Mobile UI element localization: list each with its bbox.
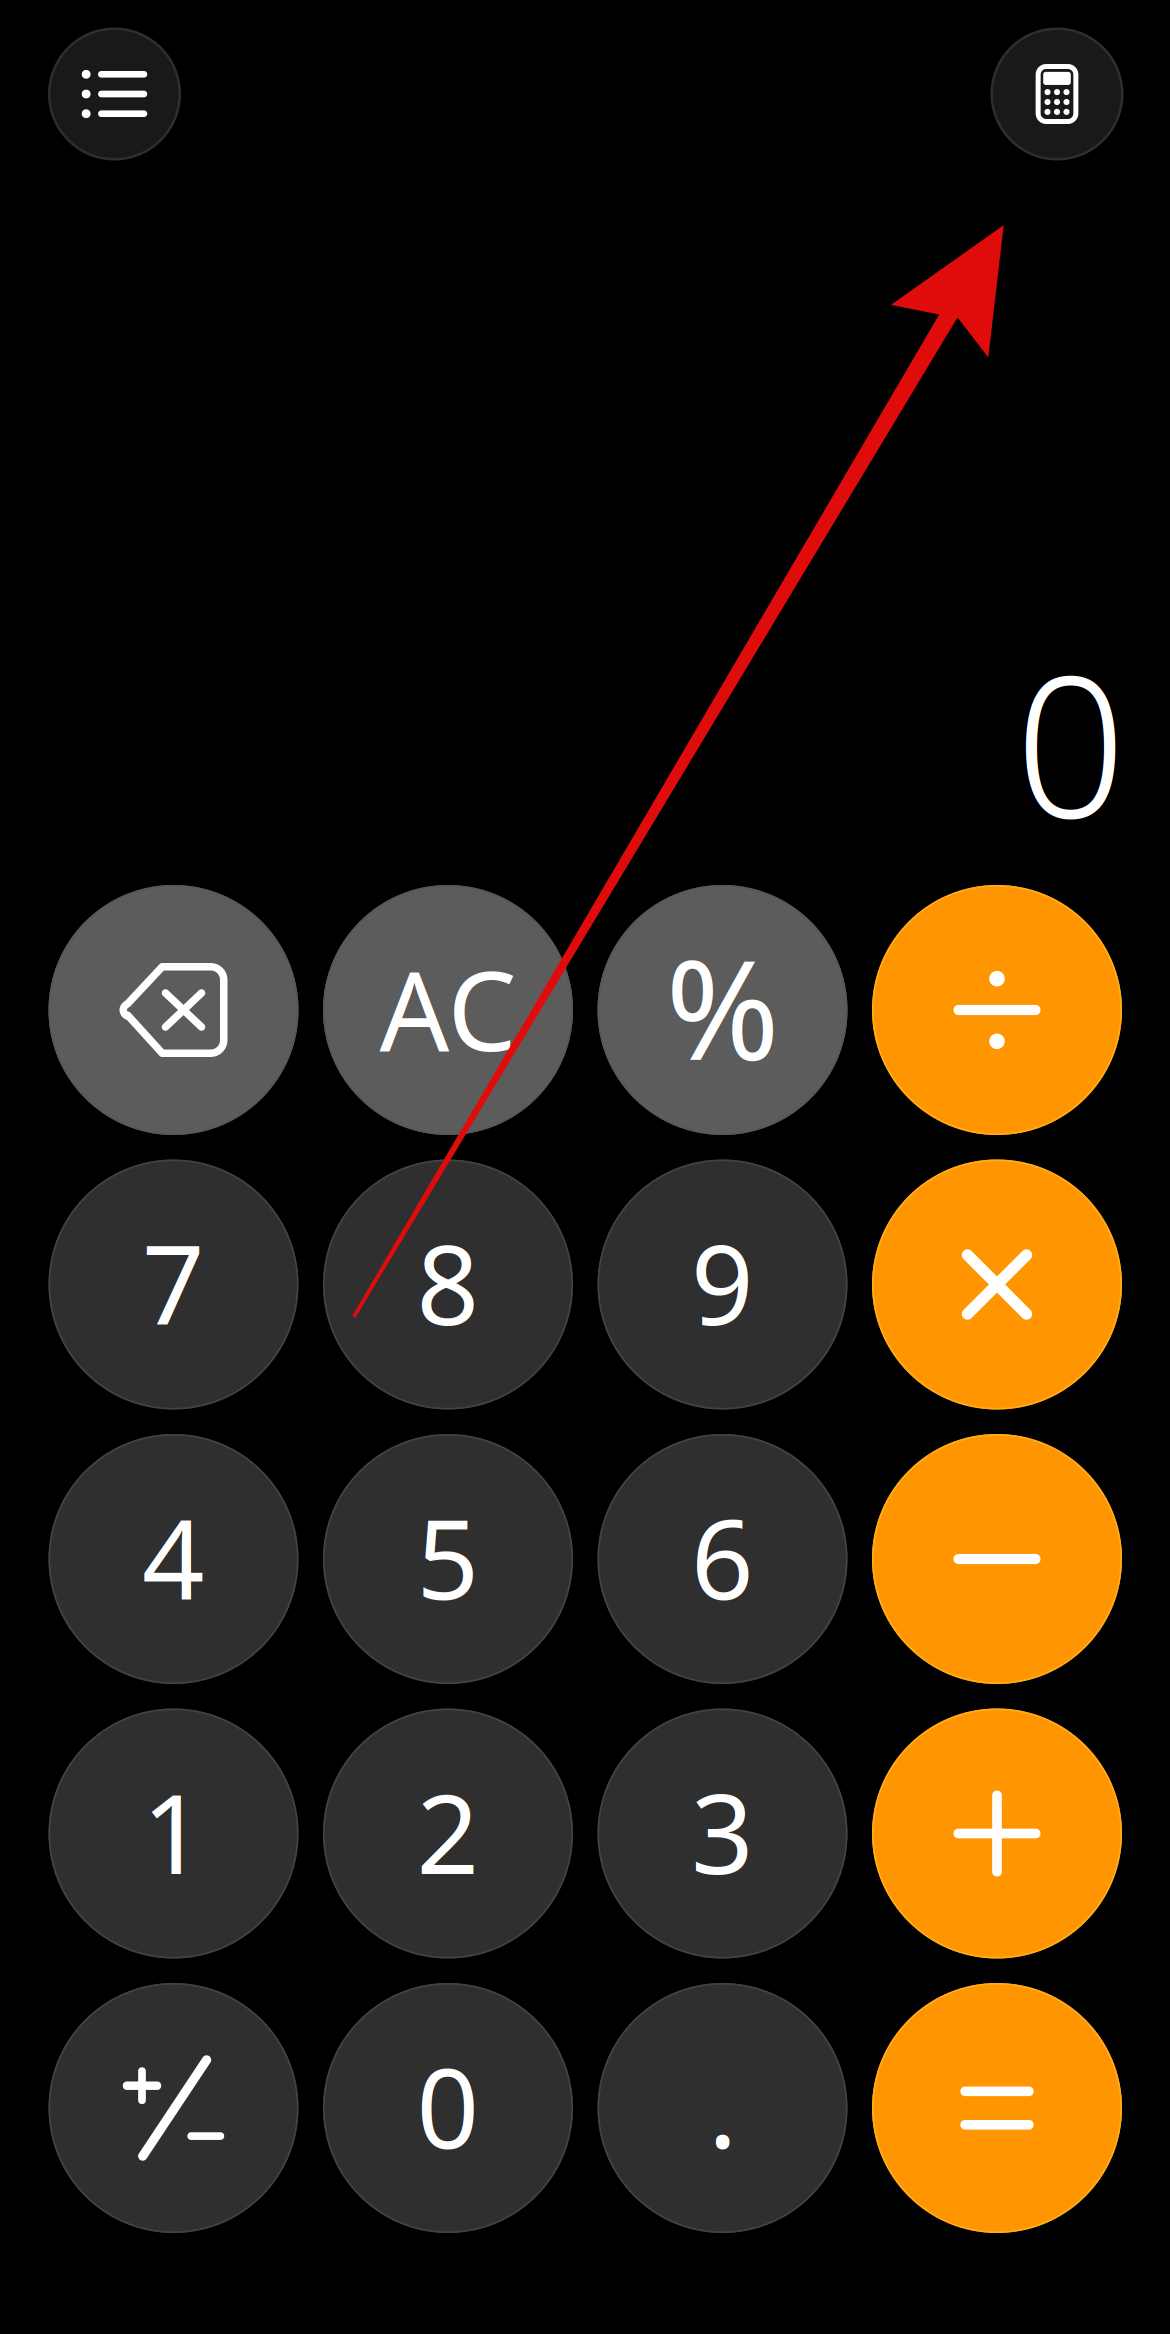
staticText: %	[665, 916, 779, 1098]
button[interactable]: Scientific calculator	[992, 29, 1122, 159]
button[interactable]: 7	[48, 1159, 298, 1409]
button[interactable]: AC	[323, 885, 573, 1135]
button[interactable]: .	[597, 1983, 847, 2233]
button[interactable]: Delete	[48, 885, 298, 1135]
button[interactable]: %	[597, 885, 847, 1135]
button[interactable]: 4	[48, 1434, 298, 1684]
staticText: 9	[691, 1210, 754, 1355]
button[interactable]: 8	[323, 1159, 573, 1409]
staticText: 4	[142, 1484, 205, 1630]
button[interactable]: 0	[323, 1983, 573, 2233]
staticText: AC	[379, 936, 516, 1081]
staticText: .	[708, 2032, 737, 2178]
staticText: 1	[142, 1759, 205, 1904]
staticText: 8	[416, 1210, 479, 1355]
button[interactable]: History	[49, 29, 180, 159]
staticText: 2	[416, 1759, 479, 1904]
staticText: 3	[691, 1759, 754, 1904]
button[interactable]: 6	[597, 1434, 847, 1684]
button[interactable]: Toggle sign	[48, 1983, 298, 2233]
button[interactable]: 1	[48, 1708, 298, 1958]
button[interactable]: Divide	[872, 885, 1122, 1135]
button[interactable]: Add	[872, 1708, 1122, 1958]
button[interactable]: 9	[597, 1159, 847, 1409]
button[interactable]: 2	[323, 1708, 573, 1958]
staticText: 6	[691, 1484, 754, 1630]
button[interactable]: 3	[597, 1708, 847, 1958]
button[interactable]: Multiply	[872, 1159, 1122, 1409]
button[interactable]: Equals	[872, 1983, 1122, 2233]
staticText: 0	[1015, 613, 1126, 871]
staticText: 7	[142, 1210, 205, 1355]
button[interactable]: 5	[323, 1434, 573, 1684]
staticText: 5	[416, 1484, 479, 1630]
staticText: 0	[416, 2033, 479, 2179]
button[interactable]: Subtract	[872, 1434, 1122, 1684]
